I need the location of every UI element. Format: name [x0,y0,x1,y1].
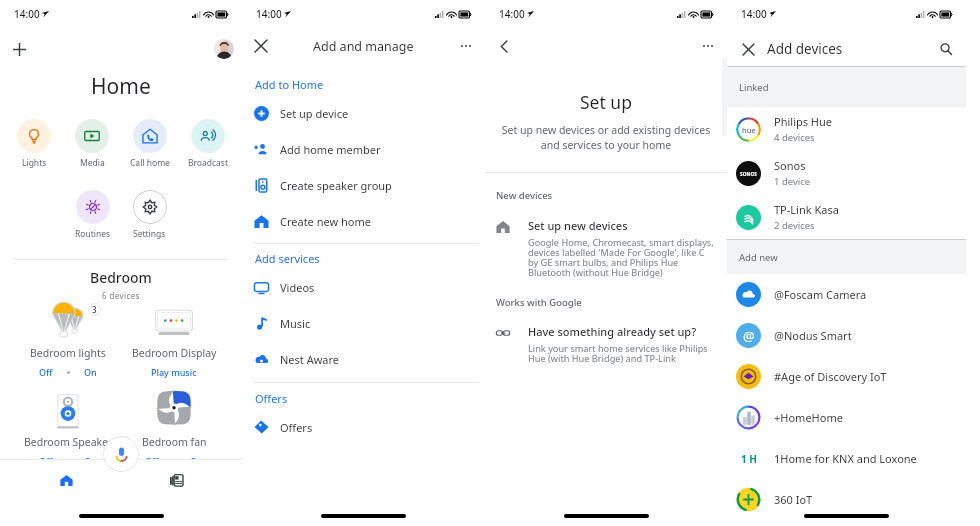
button[interactable]: TP-Link Kasa [727,195,966,239]
button[interactable]: On [84,366,97,378]
staticText: Add services [255,251,320,266]
button[interactable]: 3 [15,302,121,378]
button[interactable]: More options [697,35,719,57]
button[interactable]: Music [242,305,485,341]
staticText: Off [145,455,159,467]
staticText: Create new home [280,214,371,229]
staticText: Set up new devices [528,218,628,233]
staticText: Settings [133,228,166,240]
staticText: 1 H [741,452,757,466]
button[interactable]: Routines [64,190,121,240]
button[interactable]: Offers [242,409,485,445]
button[interactable]: Close [737,38,759,60]
button[interactable]: Set up new devices [485,218,727,279]
staticText: Bedroom fan [142,435,207,449]
staticText: Bedroom Display [132,346,217,360]
staticText: Set up [580,90,632,114]
staticText: Linked [739,81,769,94]
staticText: Add devices [767,40,843,58]
button[interactable]: @Foscam Camera [727,274,966,315]
button[interactable]: +HomeHome [727,397,966,438]
staticText: Music [280,316,311,331]
button[interactable]: Create speaker group [242,167,485,203]
staticText: Add to Home [255,77,324,92]
button[interactable]: Create new home [242,203,485,239]
staticText: @Nodus Smart [774,328,852,343]
staticText: 3 [92,304,97,315]
staticText: 2 devices [774,219,815,232]
button[interactable]: @ [727,315,966,356]
staticText: Bedroom Speaker [24,435,113,449]
staticText: Routines [75,228,111,240]
staticText: On [84,455,97,467]
staticText: 14:00 [14,7,40,21]
staticText: @Foscam Camera [774,287,867,302]
button[interactable]: Nest Aware [242,341,485,377]
staticText: #Age of Discovery IoT [774,369,887,384]
button[interactable]: Media [63,119,121,169]
button[interactable]: Search [936,39,956,59]
button[interactable]: Account [214,39,234,59]
button[interactable]: #Age of Discovery IoT [727,356,966,397]
staticText: Broadcast [188,157,228,169]
staticText: Have something already set up? [528,324,697,339]
button[interactable]: Broadcast [179,119,237,169]
staticText: Add and manage [313,38,414,55]
button[interactable]: Play music [151,366,197,378]
button[interactable]: More options [455,35,477,57]
button[interactable]: Settings [121,190,178,240]
staticText: 1 device [774,175,811,188]
staticText: Offers [280,420,313,435]
staticText: Offers [255,391,288,406]
button[interactable]: Home [11,460,121,501]
staticText: 14:00 [741,7,767,21]
button[interactable]: Videos [242,269,485,305]
staticText: 1Home for KNX and Loxone [774,451,917,466]
button[interactable]: Back [493,35,515,57]
staticText: SONOS [740,171,758,177]
staticText: Lights [22,157,47,169]
staticText: Add new [739,251,778,264]
button[interactable]: Bedroom Speaker [15,391,121,467]
staticText: New devices [496,189,553,202]
staticText: Google Home, Chromecast, smart displays,… [528,236,715,279]
staticText: Create speaker group [280,178,392,193]
button[interactable]: Feed [121,460,231,501]
staticText: Call home [130,157,170,169]
staticText: Nest Aware [280,352,340,367]
button[interactable]: Add [8,38,30,60]
button[interactable]: Bedroom Display [121,302,227,378]
staticText: 14:00 [499,7,525,21]
staticText: Videos [280,280,315,295]
staticText: Link your smart home services like Phili… [528,342,715,365]
button[interactable]: Have something already set up? [485,324,727,365]
button[interactable]: hue [727,107,966,151]
button[interactable]: 1 H [727,438,966,479]
staticText: Off [39,455,53,467]
staticText: 4 devices [774,131,815,144]
staticText: TP-Link Kasa [774,202,839,217]
staticText: @ [743,327,755,345]
staticText: Home [91,72,151,101]
button[interactable]: Google Assistant microphone [103,436,139,472]
button[interactable]: SONOS [727,151,966,195]
staticText: Works with Google [496,296,582,309]
button[interactable]: Call home [121,119,179,169]
staticText: On [190,455,203,467]
staticText: 360 IoT [774,492,813,507]
button[interactable]: Add home member [242,131,485,167]
staticText: Sonos [774,158,806,173]
staticText: Philips Hue [774,114,833,129]
staticText: Set up new devices or add existing devic… [492,123,720,152]
button[interactable]: 360 IoT [727,479,966,520]
staticText: Media [80,157,105,169]
button[interactable]: Bedroom fan [121,391,227,467]
staticText: 6 devices [102,290,140,301]
button[interactable]: Lights [5,119,63,169]
button[interactable]: Close [250,35,272,57]
staticText: 14:00 [256,7,282,21]
button[interactable]: Off [39,366,53,378]
staticText: +HomeHome [774,410,843,425]
staticText: Bedroom [90,268,152,287]
button[interactable]: Set up device [242,95,485,131]
